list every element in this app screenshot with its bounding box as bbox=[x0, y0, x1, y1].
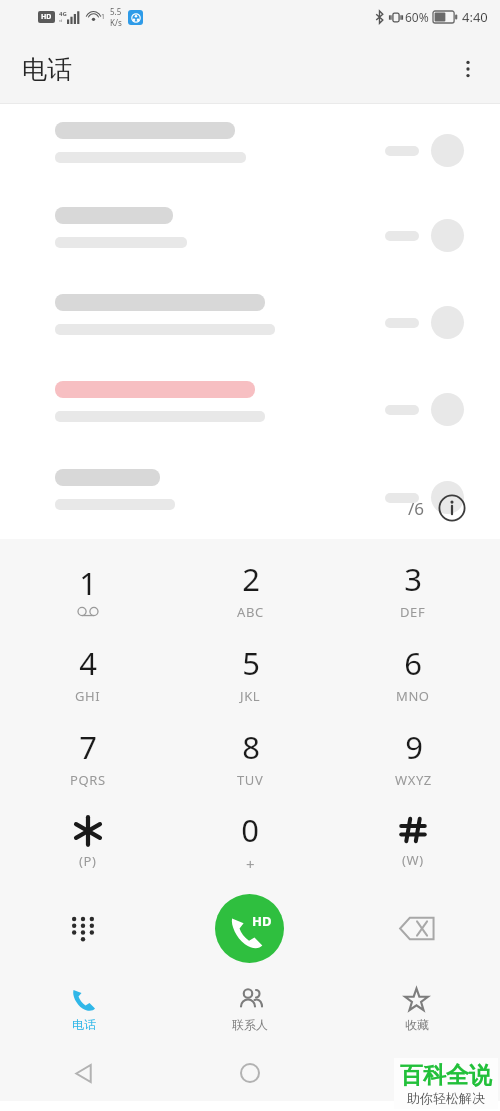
staticText: 2 bbox=[242, 558, 260, 600]
button[interactable]: (W) bbox=[338, 799, 488, 883]
staticText: 7 bbox=[79, 726, 97, 768]
button[interactable]: Back bbox=[59, 1049, 107, 1097]
button[interactable]: Delete bbox=[385, 896, 449, 960]
staticText: GHI bbox=[75, 687, 101, 705]
staticText: DEF bbox=[400, 603, 426, 621]
staticText: 5.5 bbox=[110, 6, 122, 17]
staticText: 4:40 bbox=[462, 8, 488, 26]
staticText: PQRS bbox=[70, 771, 106, 789]
staticText: /6 bbox=[408, 497, 425, 520]
staticText: MNO bbox=[396, 687, 430, 705]
staticText: (W) bbox=[402, 851, 424, 869]
staticText: 联系人 bbox=[232, 1017, 268, 1032]
button[interactable]: 6 bbox=[338, 631, 488, 715]
staticText: 4G bbox=[59, 10, 67, 18]
staticText: HD bbox=[252, 912, 272, 930]
button[interactable]: 电话 bbox=[0, 973, 166, 1045]
button[interactable]: (P) bbox=[13, 799, 163, 883]
button[interactable]: 0 bbox=[175, 799, 325, 883]
staticText: ᵗᵈ bbox=[59, 18, 63, 25]
staticText: 收藏 bbox=[405, 1017, 429, 1032]
staticText: 1 bbox=[101, 12, 106, 22]
button[interactable]: Home bbox=[226, 1049, 274, 1097]
button[interactable]: 8 bbox=[175, 715, 325, 799]
button[interactable]: Call bbox=[215, 894, 284, 963]
staticText: K/s bbox=[110, 17, 122, 28]
staticText: WXYZ bbox=[395, 771, 432, 789]
staticText: + bbox=[246, 854, 255, 874]
staticText: (P) bbox=[79, 852, 97, 870]
staticText: 0 bbox=[241, 809, 259, 851]
button[interactable]: 9 bbox=[338, 715, 488, 799]
staticText: 1 bbox=[79, 562, 97, 604]
staticText: 6 bbox=[404, 642, 422, 684]
button[interactable]: More options bbox=[444, 45, 492, 93]
staticText: 60% bbox=[405, 9, 429, 25]
staticText: 3 bbox=[404, 558, 422, 600]
button[interactable]: 7 bbox=[13, 715, 163, 799]
staticText: 电话 bbox=[22, 54, 72, 85]
staticText: TUV bbox=[237, 771, 264, 789]
button[interactable]: 联系人 bbox=[166, 973, 333, 1045]
button[interactable]: Call details bbox=[436, 492, 468, 524]
staticText: JKL bbox=[240, 687, 261, 705]
button[interactable]: Hide keypad bbox=[51, 896, 115, 960]
staticText: HD bbox=[41, 12, 52, 22]
staticText: 5 bbox=[242, 642, 260, 684]
staticText: ABC bbox=[237, 603, 264, 621]
button[interactable]: 5 bbox=[175, 631, 325, 715]
button[interactable]: 3 bbox=[338, 547, 488, 631]
staticText: 8 bbox=[242, 726, 260, 768]
staticText: 9 bbox=[405, 726, 423, 768]
staticText: 助你轻松解决 bbox=[407, 1090, 485, 1106]
staticText: 电话 bbox=[72, 1017, 96, 1032]
button[interactable]: 4 bbox=[13, 631, 163, 715]
staticText: 4 bbox=[79, 642, 97, 684]
button[interactable]: 2 bbox=[175, 547, 325, 631]
button[interactable]: 1 bbox=[13, 547, 163, 631]
button[interactable]: 收藏 bbox=[333, 973, 500, 1045]
button[interactable]: Recents bbox=[393, 1049, 441, 1097]
staticText: 百科全说 bbox=[400, 1061, 492, 1090]
